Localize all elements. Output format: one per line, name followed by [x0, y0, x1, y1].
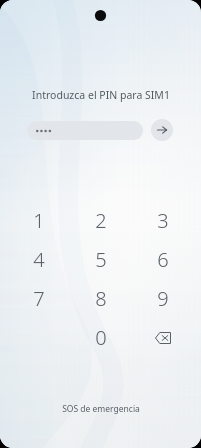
staticText: 1: [33, 207, 45, 234]
button[interactable]: Enviar PIN: [151, 119, 173, 141]
button[interactable]: [27, 121, 143, 140]
staticText: 2: [95, 207, 107, 234]
staticText: SOS de emergencia: [62, 403, 140, 415]
staticText: 8: [95, 285, 107, 312]
staticText: 9: [157, 285, 169, 312]
staticText: 5: [95, 246, 107, 273]
staticText: Introduzca el PIN para SIM1: [32, 88, 170, 102]
button[interactable]: Borrar: [132, 318, 194, 357]
staticText: 7: [33, 285, 45, 312]
button[interactable]: 8: [70, 279, 132, 318]
button[interactable]: 6: [132, 240, 194, 279]
button[interactable]: 5: [70, 240, 132, 279]
staticText: 0: [95, 324, 107, 351]
button[interactable]: 3: [132, 201, 194, 240]
button[interactable]: 7: [8, 279, 70, 318]
button[interactable]: SOS de emergencia: [50, 398, 152, 420]
button[interactable]: 4: [8, 240, 70, 279]
staticText: 3: [157, 207, 169, 234]
button[interactable]: 2: [70, 201, 132, 240]
button[interactable]: 1: [8, 201, 70, 240]
staticText: 4: [33, 246, 45, 273]
button[interactable]: 9: [132, 279, 194, 318]
button[interactable]: 0: [70, 318, 132, 357]
staticText: 6: [157, 246, 169, 273]
